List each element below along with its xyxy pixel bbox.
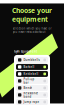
- button[interactable]: Kettlebell: [16, 71, 48, 77]
- staticText: Resistance band: [23, 91, 38, 98]
- button[interactable]: Pull-up bar: [16, 78, 48, 84]
- button[interactable]: Resistance band: [16, 92, 48, 98]
- button[interactable]: Jump rope: [16, 99, 48, 105]
- staticText: Choose your equipment: [12, 6, 52, 24]
- staticText: Barbell: [23, 65, 34, 69]
- staticText: Dumbbells: [23, 58, 39, 62]
- button[interactable]: Bench: [16, 85, 48, 91]
- staticText: Pull-up bar: [23, 77, 34, 84]
- staticText: Jump rope: [23, 100, 39, 104]
- staticText: Selection which you have or you never mi…: [12, 27, 51, 34]
- staticText: Gym Equipment: [14, 50, 37, 53]
- button[interactable]: Barbell: [16, 64, 48, 70]
- button[interactable]: Dumbbells: [16, 57, 48, 63]
- staticText: Bench: [23, 86, 32, 90]
- staticText: Kettlebell: [23, 72, 38, 76]
